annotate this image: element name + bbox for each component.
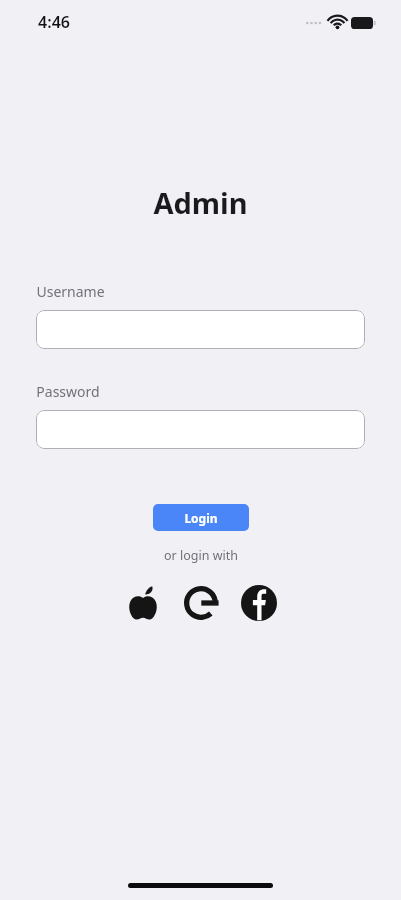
button[interactable]: Login [153, 504, 249, 531]
button[interactable] [36, 410, 365, 449]
staticText: Password [36, 382, 100, 401]
staticText: Admin [153, 183, 248, 222]
staticText: 4:46 [38, 11, 70, 33]
staticText: or login with [164, 547, 238, 564]
staticText: Login [184, 510, 218, 526]
button[interactable]: Sign in with Google [179, 581, 223, 625]
button[interactable]: Sign in with Apple [121, 581, 165, 625]
button[interactable]: Sign in with Facebook [237, 581, 281, 625]
staticText: Username [36, 282, 105, 301]
button[interactable] [36, 310, 365, 349]
